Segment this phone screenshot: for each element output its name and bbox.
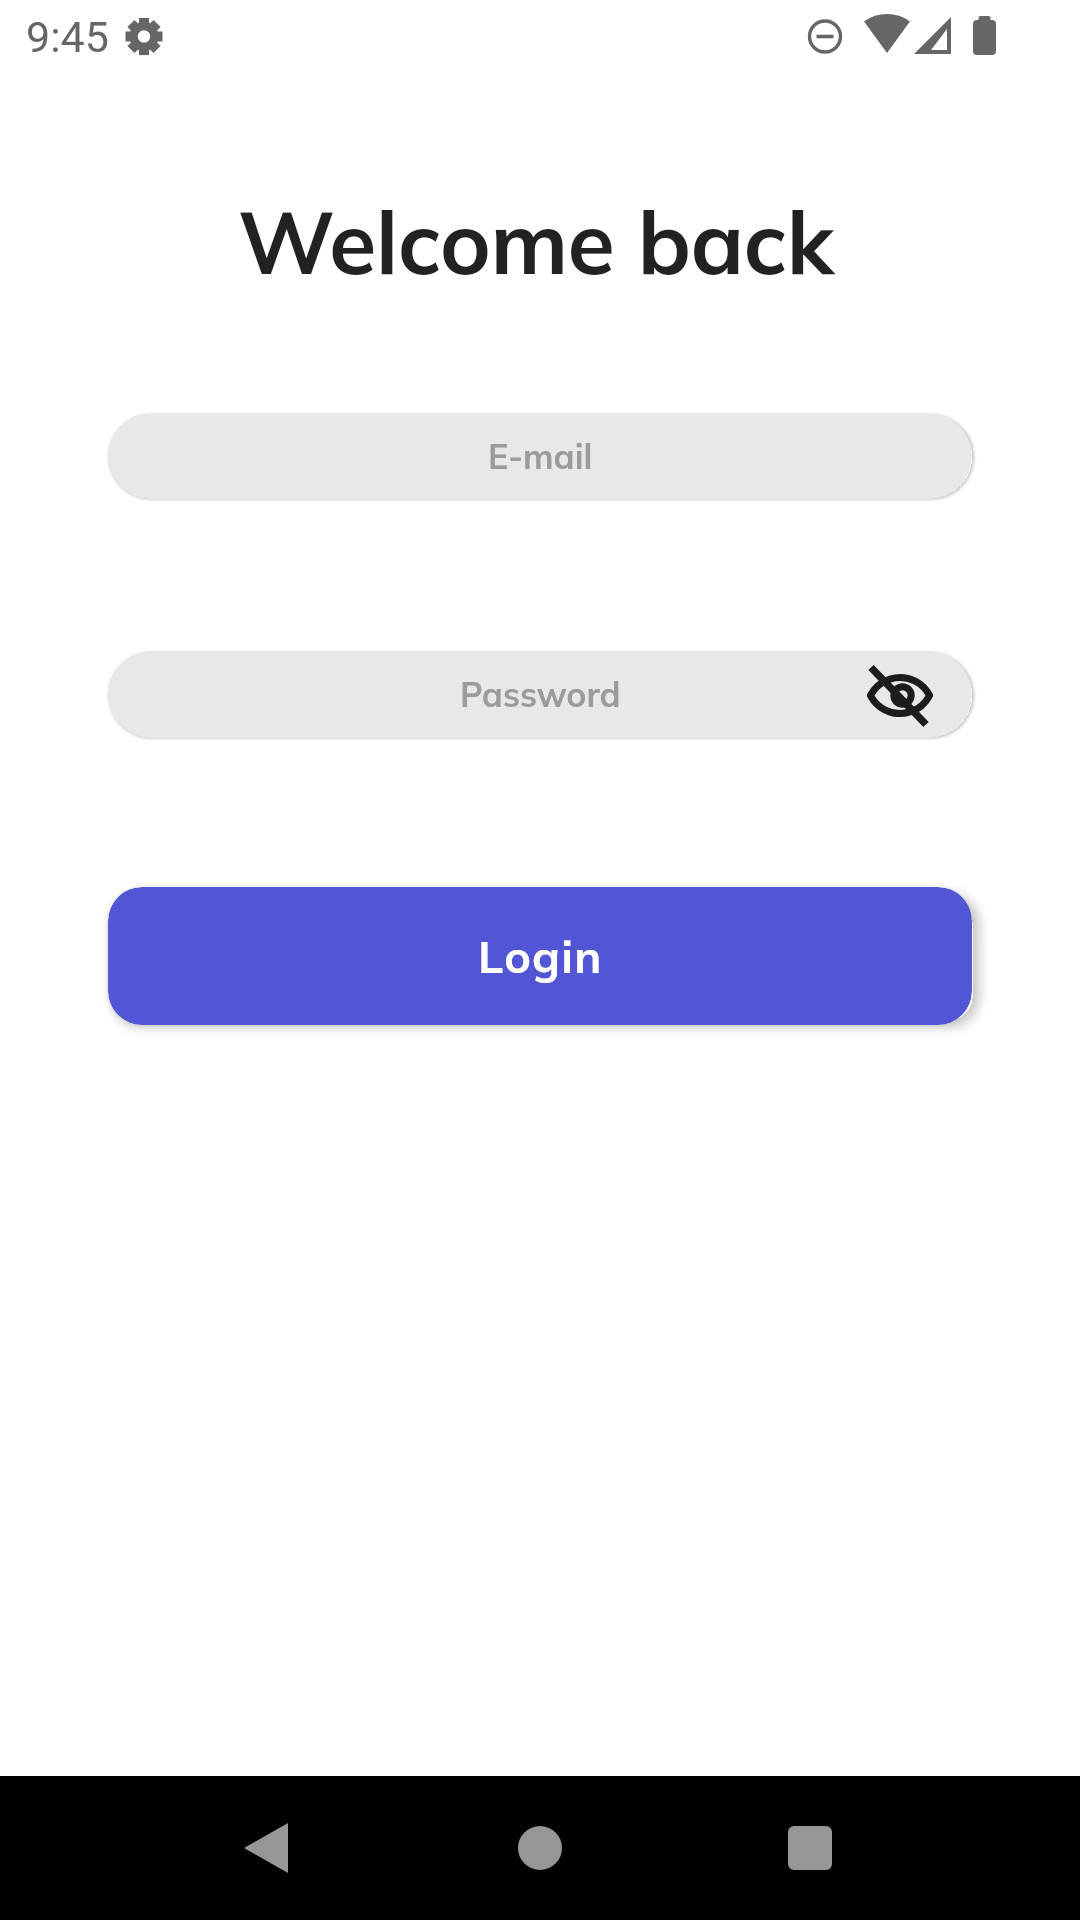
button[interactable] [194, 1776, 338, 1920]
button[interactable] [468, 1776, 612, 1920]
staticText: E-mail [488, 435, 593, 478]
staticText: Welcome back [238, 187, 834, 296]
button[interactable]: E-mail [108, 413, 972, 499]
staticText: Login [478, 928, 603, 984]
staticText: Password [460, 673, 621, 716]
button[interactable]: Login [108, 887, 972, 1025]
button[interactable]: Password [108, 651, 972, 738]
staticText: 9:45 [26, 12, 109, 62]
button[interactable] [738, 1776, 882, 1920]
button[interactable] [856, 651, 943, 738]
